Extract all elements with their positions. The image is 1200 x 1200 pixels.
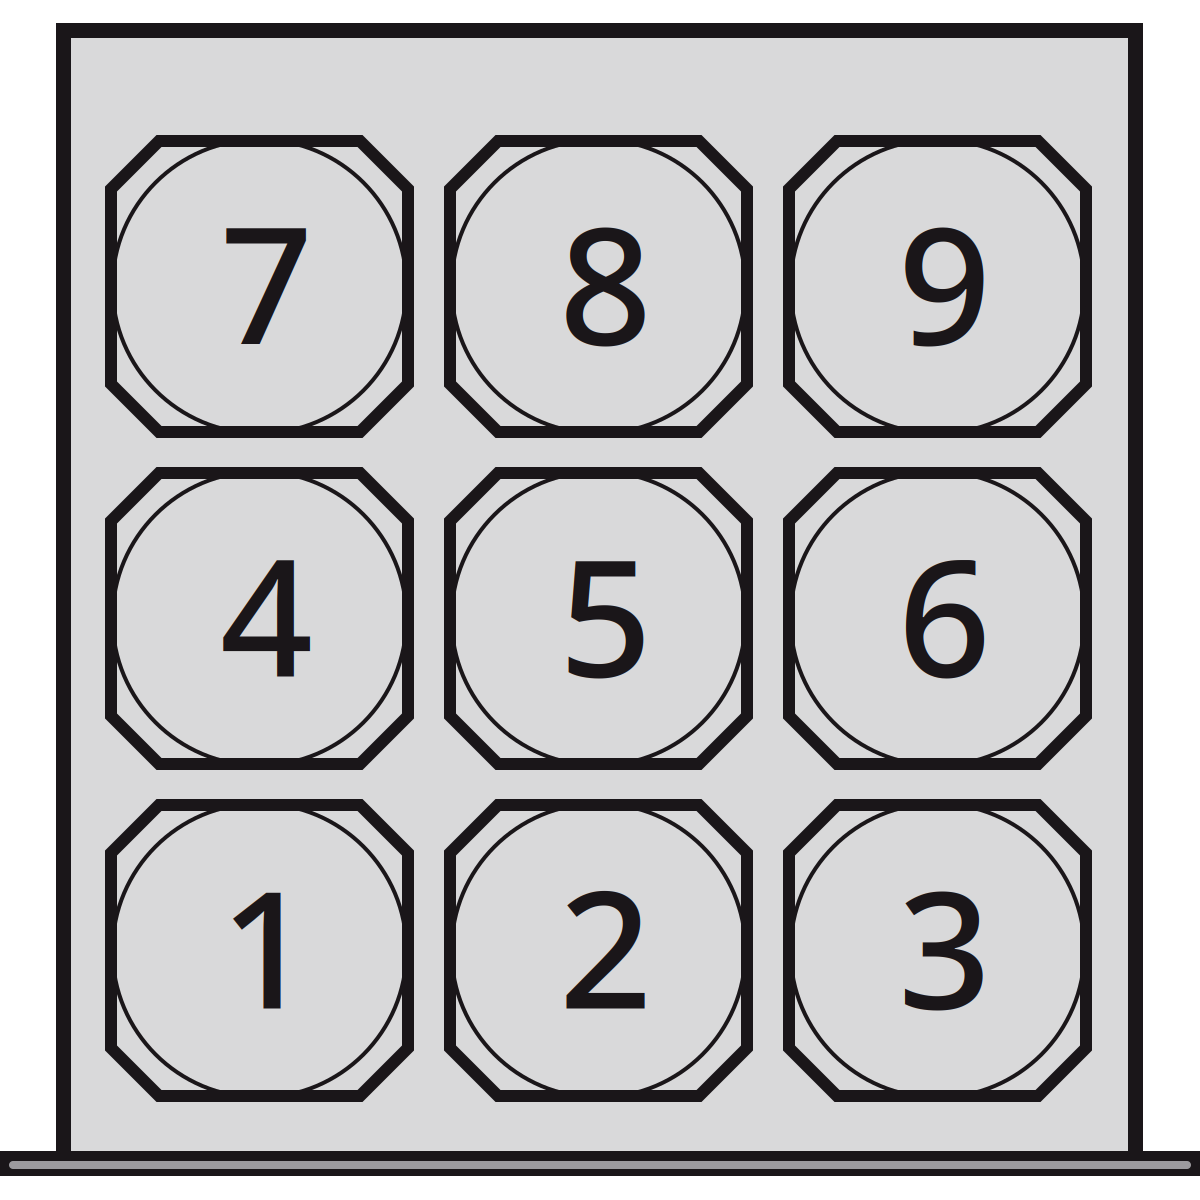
staticText: 5 — [559, 505, 652, 721]
staticText: 6 — [898, 505, 991, 721]
button[interactable]: 4 — [111, 473, 408, 764]
staticText: 1 — [220, 837, 313, 1053]
button[interactable]: 6 — [789, 473, 1086, 764]
button[interactable]: 1 — [111, 805, 408, 1096]
button[interactable]: 7 — [111, 141, 408, 432]
staticText: 8 — [559, 173, 652, 389]
staticText: 3 — [898, 837, 991, 1053]
button[interactable]: 2 — [450, 805, 747, 1096]
button[interactable]: 8 — [450, 141, 747, 432]
staticText: 9 — [898, 173, 991, 389]
button[interactable]: 5 — [450, 473, 747, 764]
staticText: 4 — [220, 505, 313, 721]
button[interactable]: 3 — [789, 805, 1086, 1096]
staticText: 7 — [220, 173, 313, 389]
button[interactable]: 9 — [789, 141, 1086, 432]
staticText: 2 — [559, 837, 652, 1053]
